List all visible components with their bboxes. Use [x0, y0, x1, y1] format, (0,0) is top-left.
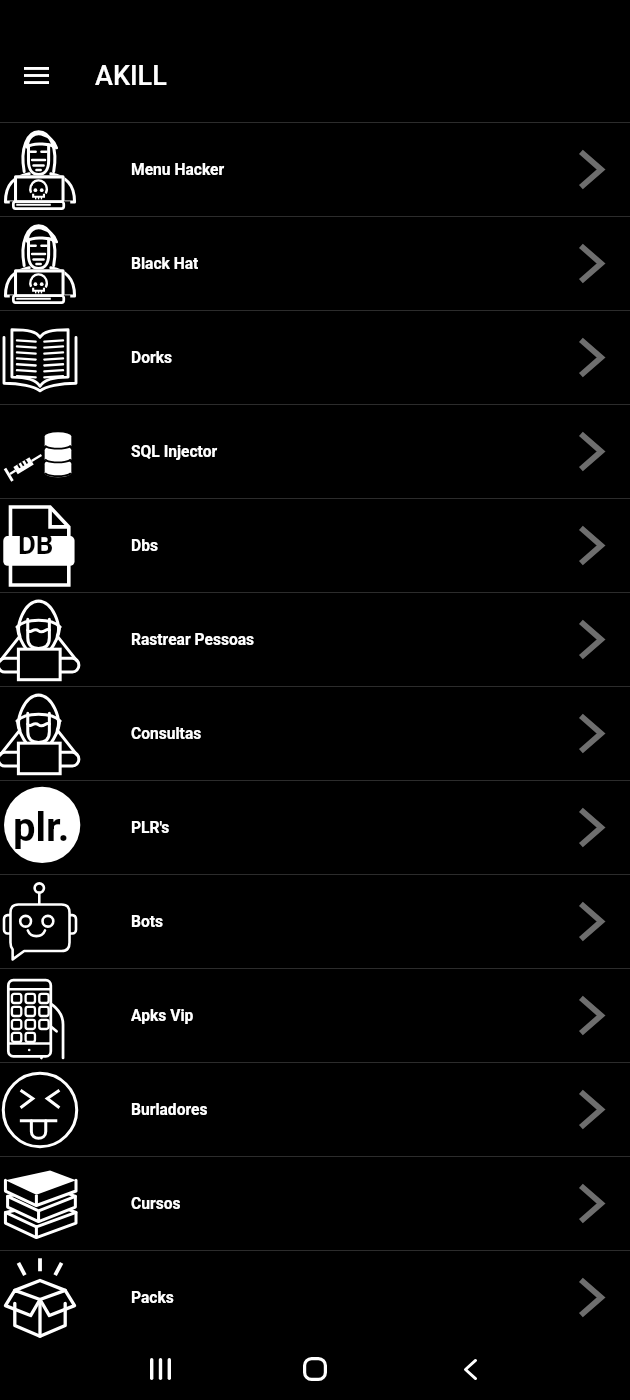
staticText: Apks Vip	[131, 1007, 194, 1025]
button[interactable]: Apks Vip	[0, 969, 630, 1062]
staticText: Consultas	[131, 725, 202, 743]
button[interactable]: Back	[430, 1338, 510, 1400]
button[interactable]: plr.	[0, 781, 630, 874]
button[interactable]: Dorks	[0, 311, 630, 404]
staticText: Rastrear Pessoas	[131, 631, 255, 649]
button[interactable]: Menu Hacker	[0, 123, 630, 216]
button[interactable]: SQL Injector	[0, 405, 630, 498]
staticText: AKILL	[95, 60, 167, 92]
button[interactable]: DB	[0, 499, 630, 592]
staticText: Cursos	[131, 1195, 181, 1213]
staticText: PLR's	[131, 819, 170, 837]
staticText: Burladores	[131, 1101, 208, 1119]
button[interactable]: Rastrear Pessoas	[0, 593, 630, 686]
button[interactable]: Black Hat	[0, 217, 630, 310]
button[interactable]: Recent apps	[120, 1338, 200, 1400]
staticText: Dorks	[131, 349, 172, 367]
staticText: SQL Injector	[131, 443, 218, 461]
button[interactable]: Packs	[0, 1251, 630, 1344]
staticText: Menu Hacker	[131, 161, 225, 179]
staticText: Packs	[131, 1289, 174, 1307]
button[interactable]: Cursos	[0, 1157, 630, 1250]
button[interactable]: Home	[275, 1338, 355, 1400]
button[interactable]: Menu	[8, 47, 65, 104]
staticText: Bots	[131, 913, 164, 931]
staticText: Black Hat	[131, 255, 199, 273]
staticText: plr.	[13, 804, 70, 851]
button[interactable]: Bots	[0, 875, 630, 968]
button[interactable]: Burladores	[0, 1063, 630, 1156]
staticText: Dbs	[131, 537, 158, 555]
staticText: DB	[18, 528, 54, 560]
button[interactable]: Consultas	[0, 687, 630, 780]
